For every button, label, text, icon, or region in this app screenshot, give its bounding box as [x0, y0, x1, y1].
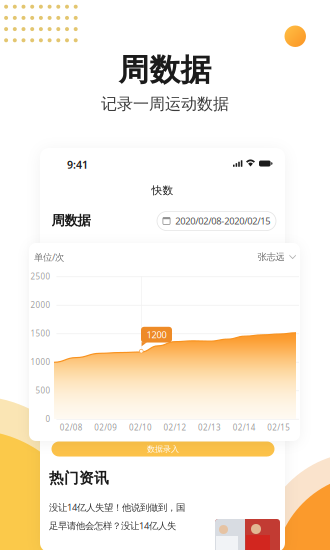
- staticText: 02/12: [163, 422, 186, 433]
- staticText: 1200: [146, 328, 166, 341]
- staticText: 02/13: [198, 422, 221, 433]
- staticText: 没让14亿人失望！他说到做到，国: [49, 501, 185, 513]
- staticText: 02/08: [60, 422, 83, 433]
- staticText: 0: [45, 414, 50, 424]
- staticText: 02/09: [94, 422, 117, 433]
- staticText: 02/10: [129, 422, 152, 433]
- button[interactable]: 张志远: [242, 250, 296, 264]
- staticText: 1000: [30, 357, 50, 367]
- staticText: 2000: [30, 300, 50, 310]
- staticText: 快数: [151, 184, 173, 197]
- staticText: 记录一周运动数据: [101, 94, 229, 114]
- button[interactable]: 2020/02/08-2020/02/15: [157, 211, 276, 230]
- staticText: 热门资讯: [49, 469, 109, 487]
- staticText: 9:41: [67, 157, 88, 172]
- staticText: 500: [35, 385, 50, 396]
- staticText: 1500: [30, 328, 50, 339]
- button[interactable]: 数据录入: [51, 441, 274, 456]
- staticText: 02/14: [233, 422, 256, 433]
- staticText: 2020/02/08-2020/02/15: [175, 215, 270, 227]
- staticText: 数据录入: [147, 444, 179, 454]
- staticText: 张志远: [257, 251, 284, 263]
- staticText: 2500: [30, 271, 50, 282]
- staticText: 02/15: [267, 422, 290, 433]
- staticText: 周数据: [51, 212, 90, 229]
- staticText: 单位/次: [34, 251, 64, 263]
- staticText: 周数据: [118, 51, 211, 89]
- staticText: 足早请他会怎样？没让14亿人失: [49, 519, 176, 532]
